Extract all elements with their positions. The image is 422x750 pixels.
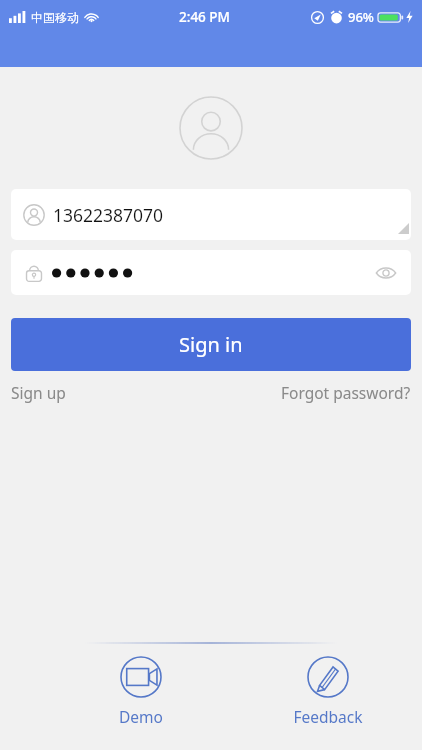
button[interactable]: 13622387070 — [11, 189, 411, 240]
staticText: 13622387070 — [53, 203, 164, 227]
staticText: 96% — [348, 8, 374, 26]
button[interactable]: Sign in — [11, 318, 411, 371]
button[interactable]: Show password — [11, 250, 411, 295]
staticText: Feedback — [293, 706, 363, 727]
button[interactable]: Show password — [371, 258, 401, 288]
staticText: Sign up — [11, 382, 66, 403]
staticText: Forgot password? — [281, 382, 411, 403]
staticText: 中国移动 — [31, 10, 79, 25]
staticText: Demo — [119, 706, 163, 727]
button[interactable]: Feedback — [284, 656, 372, 727]
button[interactable]: Demo — [97, 656, 185, 727]
staticText: Sign in — [179, 331, 243, 358]
button[interactable]: Forgot password? — [281, 382, 411, 403]
button[interactable]: Sign up — [11, 382, 66, 403]
staticText: 2:46 PM — [179, 8, 230, 26]
